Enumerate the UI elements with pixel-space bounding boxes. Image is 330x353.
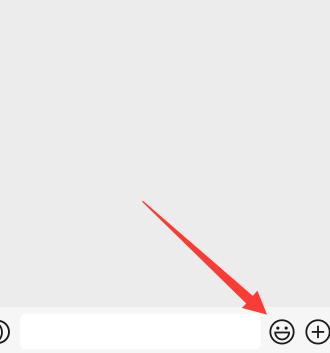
button[interactable]: Message xyxy=(20,307,261,353)
button[interactable]: Emoji xyxy=(270,307,294,353)
button[interactable]: Camera xyxy=(0,307,12,353)
button[interactable]: Add xyxy=(306,307,330,353)
